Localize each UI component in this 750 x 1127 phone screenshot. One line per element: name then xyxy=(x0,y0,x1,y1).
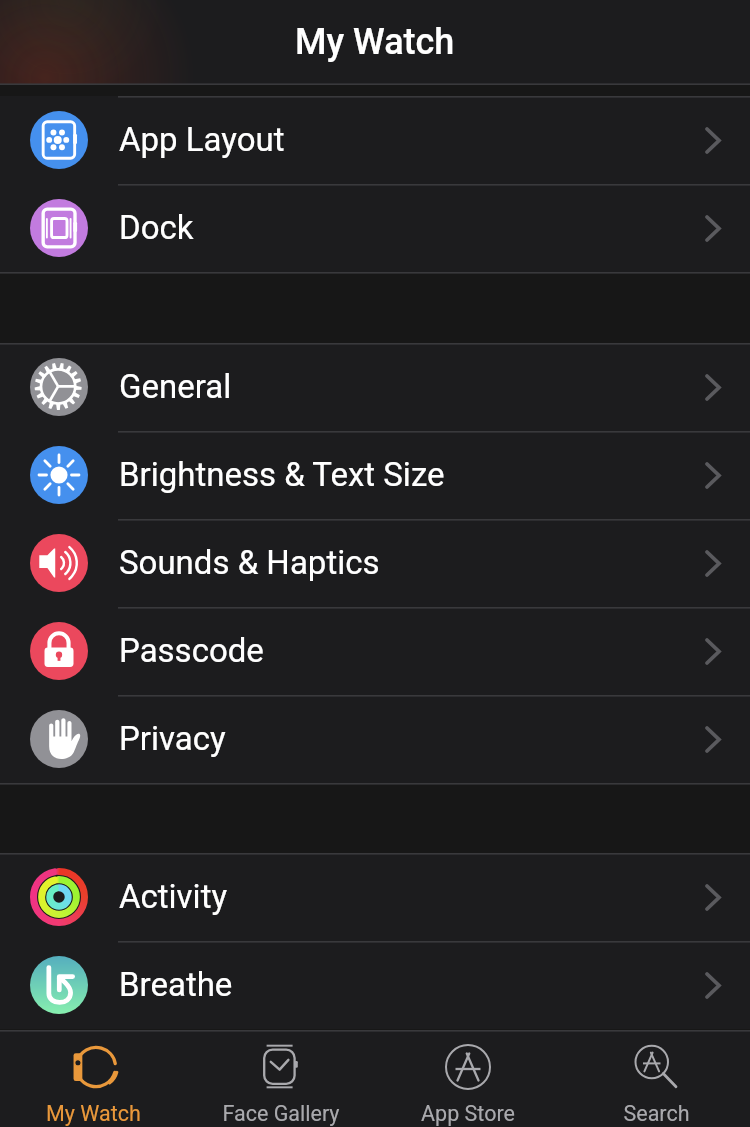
staticText: Dock xyxy=(119,208,194,247)
button[interactable]: My Watch xyxy=(0,1030,187,1127)
staticText: Sounds & Haptics xyxy=(119,543,380,582)
staticText: My Watch xyxy=(46,1101,141,1126)
staticText: Passcode xyxy=(119,631,264,670)
staticText: General xyxy=(119,367,232,406)
staticText: Breathe xyxy=(119,965,233,1004)
staticText: Privacy xyxy=(119,719,226,758)
button[interactable]: Sounds & Haptics xyxy=(0,519,750,607)
staticText: Face Gallery xyxy=(222,1101,340,1126)
button[interactable]: Brightness & Text Size xyxy=(0,431,750,519)
button[interactable]: Passcode xyxy=(0,607,750,695)
staticText: App Layout xyxy=(119,120,285,159)
staticText: App Store xyxy=(421,1101,515,1126)
button[interactable]: Breathe xyxy=(0,941,750,1029)
staticText: Activity xyxy=(119,877,228,916)
other: Search xyxy=(631,1042,681,1092)
button[interactable]: Search xyxy=(562,1030,750,1127)
button[interactable]: App Store xyxy=(374,1030,562,1127)
staticText: My Watch xyxy=(295,21,455,63)
button[interactable]: App Layout xyxy=(0,96,750,184)
button[interactable]: Activity xyxy=(0,853,750,941)
staticText: Search xyxy=(623,1101,690,1126)
button[interactable]: Dock xyxy=(0,184,750,272)
other: My Watch xyxy=(72,1042,116,1092)
other: Face Gallery xyxy=(261,1042,301,1091)
button[interactable]: General xyxy=(0,343,750,431)
staticText: Brightness & Text Size xyxy=(119,455,445,494)
other: App Store xyxy=(443,1042,493,1092)
button[interactable]: Face Gallery xyxy=(187,1030,374,1127)
button[interactable]: Privacy xyxy=(0,695,750,783)
